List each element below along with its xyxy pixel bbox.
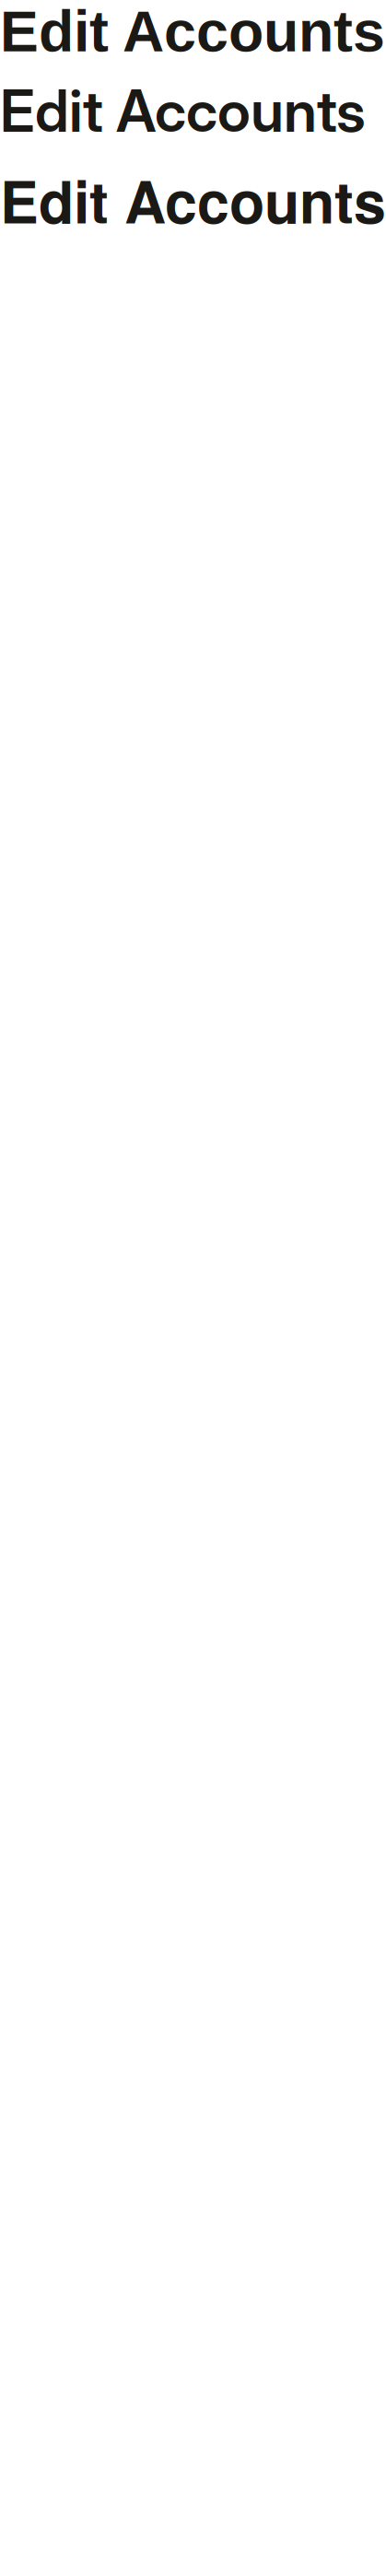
staticText: Edit Accounts [0,0,385,63]
staticText: Edit Accounts [0,159,386,241]
staticText: Edit Accounts [0,76,366,146]
